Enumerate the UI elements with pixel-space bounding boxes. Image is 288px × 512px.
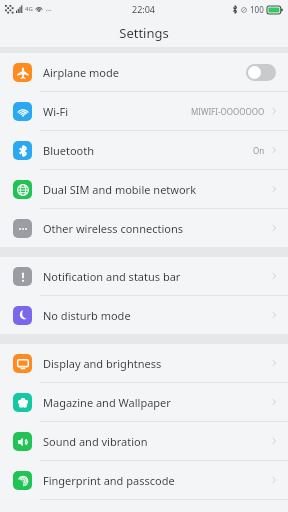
button[interactable]: Bluetooth: [0, 131, 288, 169]
button[interactable]: Display and brightness: [0, 344, 288, 382]
staticText: Wi-Fi: [43, 104, 69, 119]
staticText: 4G: [25, 5, 33, 13]
button[interactable]: No disturb mode: [0, 296, 288, 334]
staticText: Magazine and Wallpaper: [43, 395, 171, 410]
staticText: Notification and status bar: [43, 269, 181, 284]
staticText: Settings: [119, 24, 169, 42]
staticText: Bluetooth: [43, 143, 95, 158]
staticText: Dual SIM and mobile network: [43, 182, 197, 197]
staticText: Airplane mode: [43, 65, 119, 80]
button[interactable]: Notification and status bar: [0, 257, 288, 295]
staticText: On: [253, 145, 265, 156]
staticText: MIWIFI-OOOOOOO: [191, 106, 265, 117]
staticText: Fingerprint and passcode: [43, 473, 175, 488]
button[interactable]: Airplane mode toggle: [246, 64, 276, 81]
button[interactable]: Other wireless connections: [0, 209, 288, 247]
staticText: ...: [46, 4, 52, 14]
button[interactable]: Wi-Fi: [0, 92, 288, 130]
staticText: 22:04: [132, 3, 156, 15]
staticText: 100: [250, 4, 264, 15]
button[interactable]: Airplane mode: [0, 53, 288, 91]
button[interactable]: Sound and vibration: [0, 422, 288, 460]
button[interactable]: Magazine and Wallpaper: [0, 383, 288, 421]
button[interactable]: Dual SIM and mobile network: [0, 170, 288, 208]
staticText: Display and brightness: [43, 356, 162, 371]
button[interactable]: Fingerprint and passcode: [0, 461, 288, 499]
staticText: Sound and vibration: [43, 434, 148, 449]
staticText: Other wireless connections: [43, 221, 183, 236]
staticText: No disturb mode: [43, 308, 131, 323]
